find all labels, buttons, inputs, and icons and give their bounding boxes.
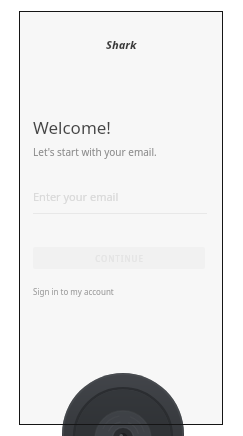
staticText: Shark [106,37,137,52]
button[interactable]: Sign in to my account [33,286,114,297]
staticText: Sign in to my account [33,286,114,297]
staticText: Let's start with your email. [33,145,157,159]
staticText: CONTINUE [95,253,144,264]
staticText: Enter your email [33,189,119,204]
staticText: Welcome! [33,116,111,139]
button[interactable]: Email input field [33,189,207,214]
